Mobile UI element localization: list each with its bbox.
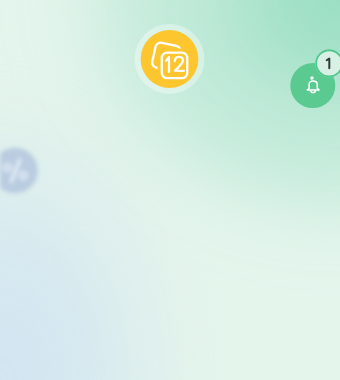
button[interactable]: 12 available offers	[141, 30, 199, 88]
button[interactable]: Discounts	[0, 148, 38, 194]
button[interactable]: Notifications, 1 unread	[290, 63, 335, 108]
